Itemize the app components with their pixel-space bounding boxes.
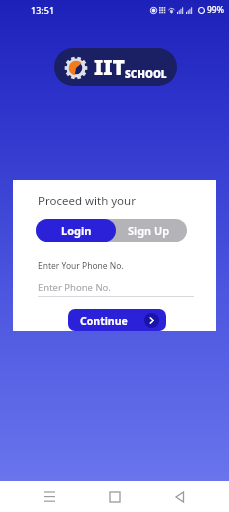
staticText: Login xyxy=(61,223,92,238)
staticText: Sign Up xyxy=(128,223,170,238)
button[interactable]: Sign Up xyxy=(111,219,187,242)
button[interactable]: Login xyxy=(36,219,116,242)
staticText: Continue xyxy=(80,314,128,328)
staticText: SCHOOL xyxy=(125,67,167,81)
staticText: 99% xyxy=(207,4,224,16)
staticText: IIT xyxy=(94,53,125,82)
staticText: Enter Your Phone No. xyxy=(38,260,124,272)
button[interactable]: Home xyxy=(98,481,132,512)
button[interactable]: IIT School logo xyxy=(54,48,177,86)
button[interactable]: Enter Phone No. xyxy=(38,279,194,296)
staticText: 13:51 xyxy=(31,4,55,16)
button[interactable]: Continue xyxy=(68,309,166,331)
staticText: Enter Phone No. xyxy=(38,281,111,294)
staticText: Proceed with your xyxy=(38,193,136,209)
button[interactable]: Recents xyxy=(32,481,66,512)
button[interactable]: Back xyxy=(163,481,197,512)
